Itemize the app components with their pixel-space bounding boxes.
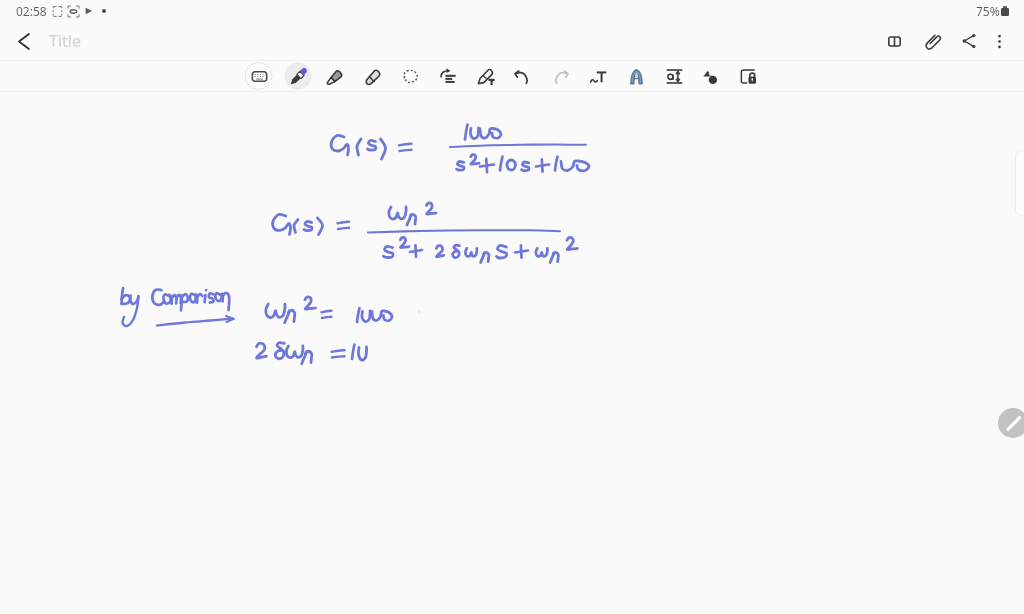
button[interactable]: Convert handwriting <box>471 61 501 91</box>
button[interactable]: Selection <box>395 61 425 91</box>
button[interactable]: Pen <box>998 408 1024 438</box>
button[interactable]: Auto shapes <box>621 61 651 91</box>
button[interactable]: Back <box>5 22 43 60</box>
button[interactable]: More options <box>980 22 1018 60</box>
button[interactable]: Lock canvas <box>733 61 763 91</box>
staticText: 02:58 <box>16 3 47 19</box>
staticText: Title <box>49 30 81 52</box>
button[interactable]: Reading mode <box>875 22 913 60</box>
button[interactable]: Share <box>950 22 988 60</box>
button[interactable]: Undo <box>507 61 537 91</box>
button[interactable]: Text alignment <box>433 61 463 91</box>
button[interactable]: Keyboard <box>244 61 274 91</box>
button[interactable]: Shapes <box>695 61 725 91</box>
button[interactable]: Pen <box>283 61 313 91</box>
button[interactable]: Convert to text <box>583 61 613 91</box>
button[interactable]: Highlighter <box>319 61 349 91</box>
button[interactable]: Eraser <box>357 61 387 91</box>
button[interactable]: Redo <box>545 61 575 91</box>
button[interactable]: Text size <box>659 61 689 91</box>
staticText: 75% <box>976 3 1000 19</box>
button[interactable]: Attach <box>914 22 952 60</box>
